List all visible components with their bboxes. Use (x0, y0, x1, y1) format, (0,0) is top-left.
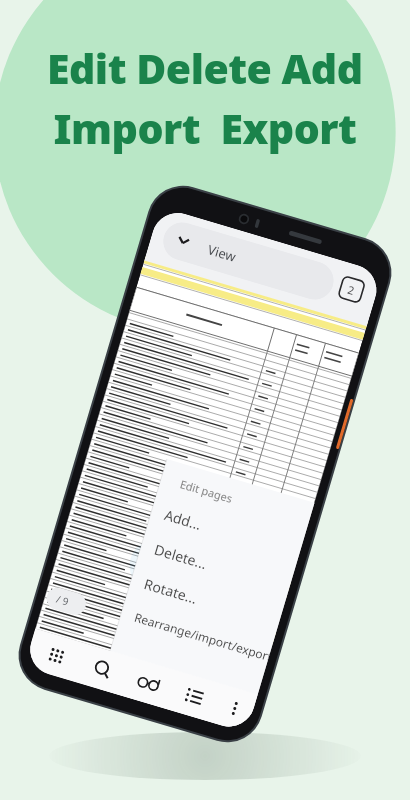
button[interactable]: Edit Delete Add Import Export promo (0, 0, 410, 800)
